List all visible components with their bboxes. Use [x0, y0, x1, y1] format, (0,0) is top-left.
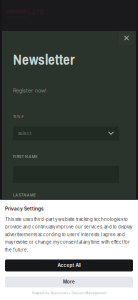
staticText: Accept All: [57, 263, 80, 268]
staticText: select: [18, 131, 31, 136]
staticText: Privacy Settings: [5, 206, 44, 212]
button[interactable]: select: [13, 126, 119, 140]
staticText: Register now!: [13, 87, 47, 94]
button[interactable]: Close: [119, 31, 134, 45]
staticText: LASTNAME: [13, 193, 35, 197]
staticText: Powered by Usercentrics Consent Manageme…: [31, 291, 106, 295]
staticText: This site uses third-party website track…: [5, 217, 132, 252]
button[interactable]: Accept All: [5, 259, 133, 271]
staticText: Newsletter: [13, 50, 75, 69]
staticText: KRONPLATZ: [6, 9, 44, 15]
staticText: TITLE: [13, 115, 23, 119]
button[interactable]: More: [5, 276, 133, 287]
staticText: FIRST NAME: [13, 154, 37, 159]
staticText: More: [63, 279, 75, 285]
